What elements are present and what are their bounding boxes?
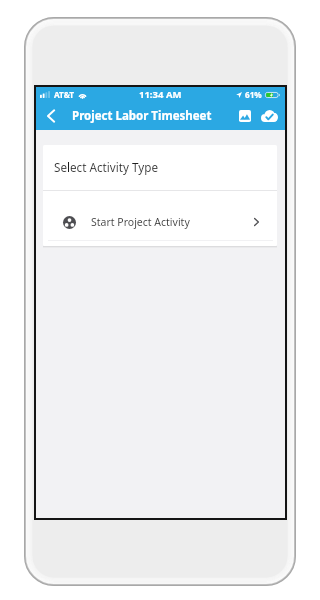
- staticText: 61%: [245, 89, 262, 100]
- staticText: Project Labor Timesheet: [72, 108, 212, 124]
- staticText: 11:34 AM: [139, 88, 182, 101]
- staticText: Start Project Activity: [91, 215, 190, 229]
- button[interactable]: Back: [36, 101, 65, 130]
- staticText: Select Activity Type: [54, 159, 158, 175]
- staticText: AT&T: [54, 89, 75, 100]
- button[interactable]: Sync to cloud: [257, 101, 281, 130]
- button[interactable]: Start Project Activity: [43, 191, 277, 240]
- button[interactable]: Photos: [234, 101, 256, 130]
